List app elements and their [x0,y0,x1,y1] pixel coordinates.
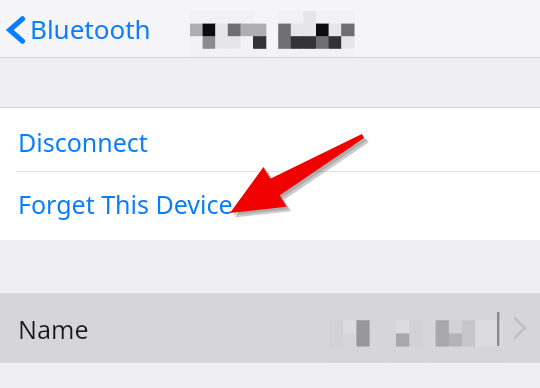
staticText: Bluetooth [30,11,151,46]
button[interactable]: Bluetooth [8,12,146,47]
staticText: Name [18,312,89,346]
button[interactable]: Name [0,293,540,363]
staticText: Disconnect [18,125,148,159]
button[interactable]: Disconnect [0,108,540,172]
staticText: Forget This Device [18,187,233,221]
button[interactable]: Forget This Device [0,172,540,240]
other: Edit name [513,316,526,340]
